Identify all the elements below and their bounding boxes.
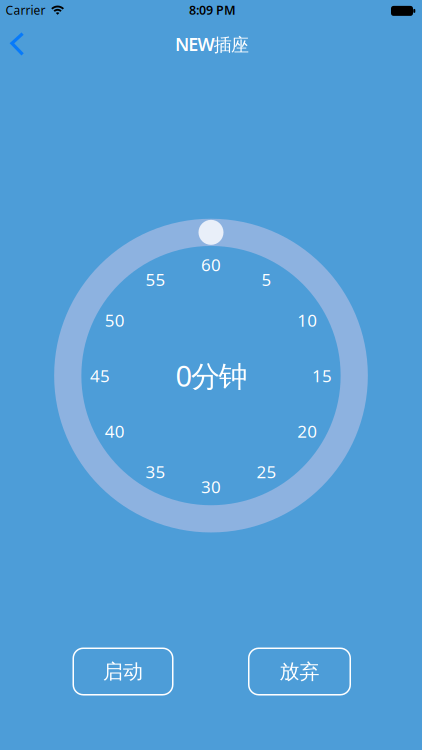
staticText: Carrier: [5, 2, 45, 18]
staticText: 55: [145, 268, 165, 291]
staticText: 45: [90, 364, 110, 387]
staticText: 启动: [103, 659, 143, 684]
button[interactable]: 启动: [72, 647, 173, 695]
button[interactable]: [4, 32, 32, 56]
staticText: 30: [201, 475, 221, 498]
staticText: 10: [297, 308, 317, 332]
staticText: 0分钟: [176, 356, 247, 395]
staticText: 25: [256, 460, 276, 483]
staticText: 60: [201, 253, 221, 276]
staticText: 15: [312, 364, 332, 387]
staticText: 40: [105, 419, 125, 443]
staticText: 放弃: [279, 659, 319, 684]
staticText: 35: [145, 460, 165, 483]
staticText: 20: [297, 419, 317, 443]
staticText: 50: [105, 308, 125, 332]
staticText: NEW插座: [175, 32, 249, 56]
staticText: 8:09 PM: [189, 1, 236, 18]
staticText: 5: [261, 268, 271, 291]
button[interactable]: 放弃: [248, 647, 351, 695]
